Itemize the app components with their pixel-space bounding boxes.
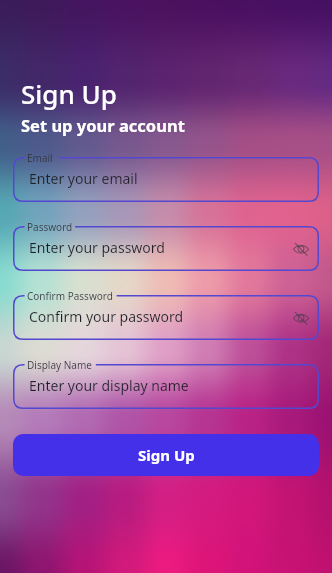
- staticText: Enter your display name: [29, 376, 189, 395]
- staticText: Set up your account: [21, 114, 185, 136]
- staticText: Confirm Password: [27, 289, 113, 303]
- staticText: Password: [27, 220, 73, 234]
- staticText: Enter your email: [29, 169, 138, 188]
- button[interactable]: Toggle password visibility: [288, 236, 314, 262]
- staticText: Display Name: [27, 358, 92, 372]
- button[interactable]: Toggle password visibility: [288, 305, 314, 331]
- button[interactable]: Confirm Password: [13, 295, 319, 340]
- button[interactable]: Sign Up: [13, 434, 319, 476]
- staticText: Email: [27, 151, 53, 165]
- button[interactable]: Display Name: [13, 364, 319, 409]
- staticText: Sign Up: [21, 76, 117, 111]
- button[interactable]: Password: [13, 226, 319, 271]
- staticText: Sign Up: [138, 445, 195, 465]
- button[interactable]: Email: [13, 157, 319, 202]
- staticText: Confirm your password: [29, 307, 184, 326]
- staticText: Enter your password: [29, 238, 165, 257]
